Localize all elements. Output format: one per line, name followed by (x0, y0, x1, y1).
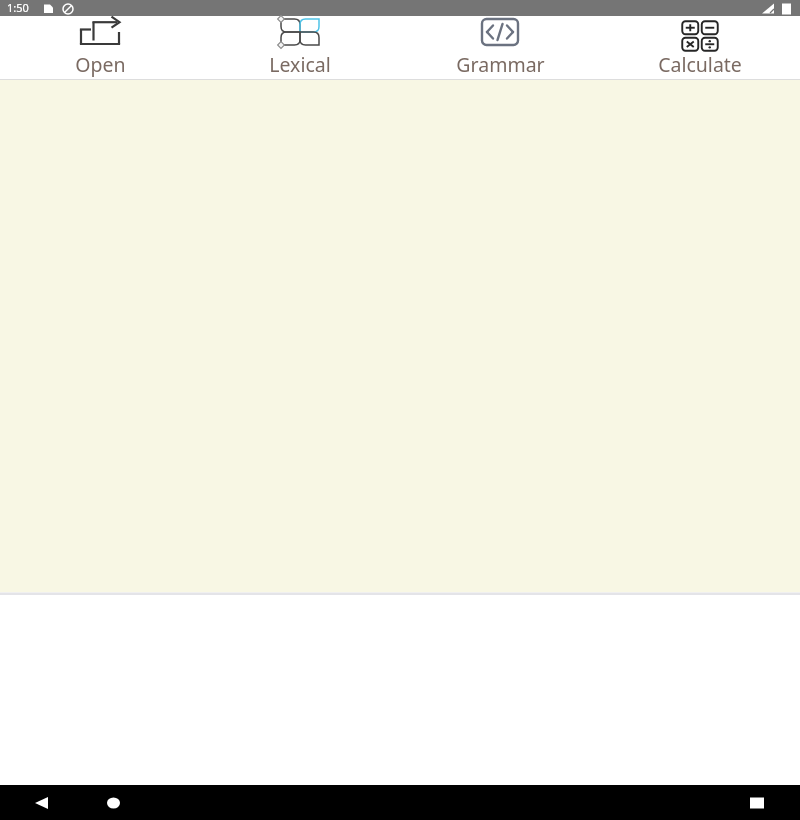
button[interactable]: Back (25, 787, 57, 819)
staticText: 1:50 (7, 0, 29, 15)
button[interactable]: Lexical (200, 16, 400, 80)
other: Grammar (474, 18, 526, 46)
button[interactable]: Home (98, 787, 130, 819)
staticText: Calculate (658, 51, 742, 78)
other: Calculate (676, 18, 724, 46)
staticText: Grammar (456, 51, 545, 78)
button[interactable]: Grammar (400, 16, 600, 80)
button[interactable]: Recents (741, 787, 773, 819)
button[interactable]: Calculate (600, 16, 800, 80)
other: Lexical (274, 18, 326, 46)
button[interactable]: Open (0, 16, 200, 80)
staticText: Lexical (269, 51, 331, 78)
other: Open (74, 18, 126, 46)
staticText: Open (75, 51, 126, 78)
